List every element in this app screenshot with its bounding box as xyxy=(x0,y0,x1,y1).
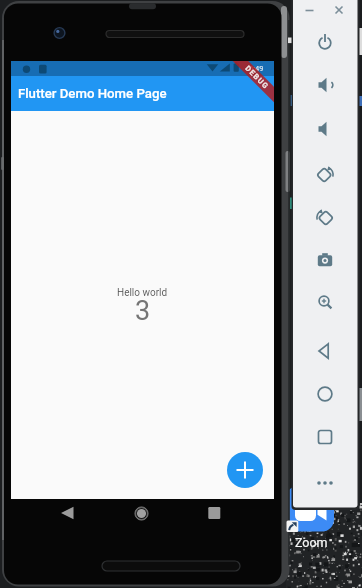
button[interactable] xyxy=(129,501,153,525)
button[interactable] xyxy=(312,161,338,187)
staticText: 6:49 xyxy=(249,64,264,73)
staticText: Zoom xyxy=(295,535,328,550)
button[interactable] xyxy=(312,72,338,98)
staticText: Hello world xyxy=(117,287,168,299)
button[interactable] xyxy=(312,338,338,364)
button[interactable] xyxy=(55,501,79,525)
button[interactable] xyxy=(312,116,338,142)
button[interactable] xyxy=(227,452,263,488)
button[interactable] xyxy=(312,204,338,230)
button[interactable] xyxy=(202,501,226,525)
button[interactable] xyxy=(312,247,338,273)
button[interactable] xyxy=(332,3,346,17)
button[interactable] xyxy=(303,4,316,17)
staticText: DEBUG xyxy=(243,64,271,91)
button[interactable] xyxy=(312,381,338,407)
staticText: 3 xyxy=(135,295,151,327)
button[interactable] xyxy=(312,29,338,55)
button[interactable] xyxy=(312,424,338,450)
button[interactable] xyxy=(312,470,338,496)
button[interactable] xyxy=(312,289,338,315)
staticText: Flutter Demo Home Page xyxy=(18,86,167,101)
